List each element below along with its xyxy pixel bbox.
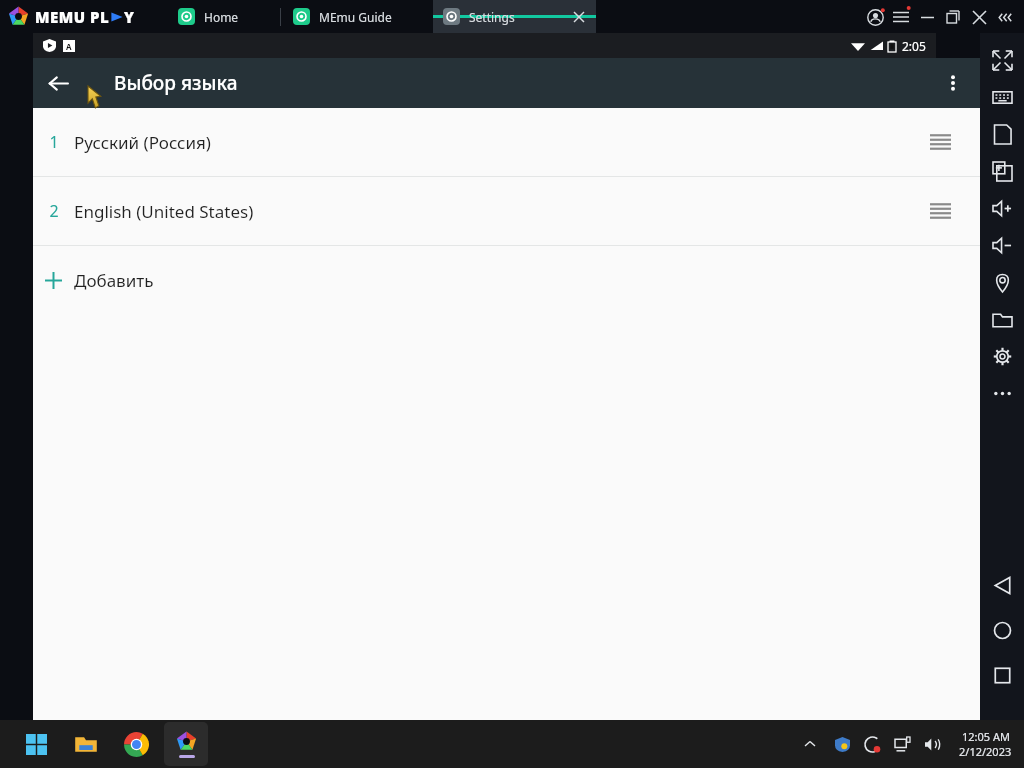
button[interactable]: Shared folder — [980, 301, 1024, 338]
staticText: 2 — [49, 200, 59, 222]
staticText: Русский (Россия) — [74, 131, 211, 154]
button[interactable]: Account — [862, 4, 888, 30]
button[interactable]: Close — [966, 4, 992, 30]
button[interactable]: MEmu Guide — [283, 0, 431, 33]
button[interactable]: Home — [980, 612, 1024, 649]
button[interactable]: Maximize — [940, 4, 966, 30]
button[interactable]: Reorder — [914, 116, 966, 168]
button[interactable]: More options — [928, 58, 978, 108]
staticText: 1 — [49, 131, 59, 153]
staticText: Home — [204, 9, 239, 25]
button[interactable]: Volume down — [980, 227, 1024, 264]
button[interactable]: Show hidden icons — [797, 731, 823, 757]
button[interactable]: Back — [980, 567, 1024, 604]
button[interactable]: Chrome — [114, 722, 158, 766]
button[interactable]: 1 — [33, 108, 980, 176]
staticText: MEMU PL — [35, 7, 110, 27]
staticText: Добавить — [74, 269, 154, 292]
button[interactable]: Keyboard — [980, 79, 1024, 116]
staticText: MEmu Guide — [319, 9, 392, 25]
staticText: 12:05 AM — [962, 729, 1010, 744]
button[interactable]: MEmu Play — [164, 722, 208, 766]
button[interactable]: Menu — [888, 4, 914, 30]
button[interactable]: Volume up — [980, 190, 1024, 227]
button[interactable]: Start — [14, 722, 58, 766]
button[interactable]: Updates — [859, 731, 885, 757]
staticText: Выбор языка — [114, 70, 238, 96]
staticText: Y — [124, 7, 134, 27]
button[interactable]: Volume — [919, 731, 945, 757]
button[interactable]: 12:05 AM — [955, 729, 1016, 759]
staticText: 2/12/2023 — [959, 744, 1012, 759]
button[interactable]: File Explorer — [64, 722, 108, 766]
staticText: A — [66, 41, 72, 52]
button[interactable]: Close tab — [568, 6, 590, 28]
staticText: English (United States) — [74, 200, 254, 223]
button[interactable]: Collapse — [992, 4, 1018, 30]
staticText: 2:05 — [902, 38, 926, 54]
button[interactable]: Back — [33, 58, 83, 108]
staticText: Settings — [469, 9, 515, 25]
button[interactable]: Security — [829, 731, 855, 757]
button[interactable]: 2 — [33, 177, 980, 245]
button[interactable]: New window — [980, 153, 1024, 190]
button[interactable]: Recents — [980, 657, 1024, 694]
button[interactable]: Minimize — [914, 4, 940, 30]
button[interactable]: Location — [980, 264, 1024, 301]
button[interactable]: Settings — [980, 338, 1024, 375]
button[interactable]: Reorder — [914, 185, 966, 237]
button[interactable]: Install APK — [980, 116, 1024, 153]
button[interactable]: More — [980, 375, 1024, 412]
button[interactable]: Home — [168, 0, 278, 33]
button[interactable]: Fullscreen — [980, 42, 1024, 79]
button[interactable]: Network — [889, 731, 915, 757]
button[interactable]: Settings — [433, 0, 596, 33]
button[interactable]: Добавить — [33, 246, 980, 314]
